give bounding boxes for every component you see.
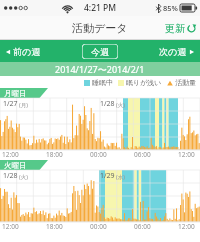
staticText: 4:21 PM <box>84 2 117 14</box>
staticText: 月曜日 <box>4 89 27 98</box>
staticText: 06:00 <box>134 222 151 231</box>
staticText: 今週 <box>91 46 109 57</box>
staticText: 12:00 <box>2 222 19 231</box>
staticText: 2014/1/27〜2014/2/1 <box>55 63 145 75</box>
staticText: 1/27 <box>3 99 18 109</box>
button[interactable]: 次の週 <box>153 43 200 60</box>
staticText: 12:00 <box>178 222 195 231</box>
staticText: 18:00 <box>46 222 63 231</box>
button[interactable]: 更新 <box>161 22 200 35</box>
staticText: 18:00 <box>46 150 63 159</box>
staticText: 睡眠中 <box>92 78 113 87</box>
staticText: (火) <box>116 101 125 109</box>
staticText: 活動データ <box>72 21 128 35</box>
staticText: 1/28 <box>100 99 115 109</box>
staticText: 85% <box>163 3 178 13</box>
staticText: 眠りが浅い <box>126 78 162 87</box>
staticText: (火) <box>19 173 28 181</box>
staticText: 火曜日 <box>4 161 27 170</box>
staticText: (月) <box>19 101 28 109</box>
staticText: 06:00 <box>134 150 151 159</box>
staticText: 活動量 <box>175 78 196 87</box>
staticText: 前の週 <box>13 46 41 57</box>
staticText: 1/29 <box>100 171 115 181</box>
staticText: 12:00 <box>2 150 19 159</box>
staticText: 1/28 <box>3 171 18 181</box>
staticText: 12:00 <box>178 150 195 159</box>
staticText: 00:00 <box>90 150 107 159</box>
staticText: 00:00 <box>90 222 107 231</box>
staticText: 更新 <box>165 22 185 35</box>
button[interactable]: 前の週 <box>0 43 47 60</box>
staticText: 次の週 <box>159 46 187 57</box>
staticText: (水) <box>116 173 125 181</box>
button[interactable]: 今週 <box>82 44 118 59</box>
